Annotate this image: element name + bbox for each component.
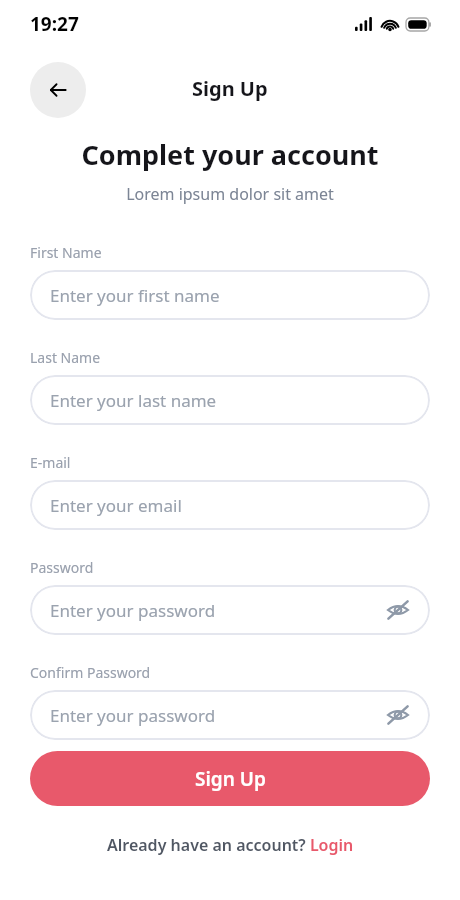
button[interactable]: Enter your password: [30, 690, 430, 740]
staticText: Enter your password: [50, 704, 384, 727]
staticText: Sign Up: [192, 75, 268, 102]
button[interactable]: Enter your email: [30, 480, 430, 530]
staticText: Sign Up: [195, 766, 266, 792]
button[interactable]: Enter your first name: [30, 270, 430, 320]
button[interactable]: Back: [30, 62, 86, 118]
staticText: Already have an account? Login: [107, 834, 354, 856]
button[interactable]: Enter your last name: [30, 375, 430, 425]
button[interactable]: Already have an account? Login: [101, 832, 360, 858]
staticText: Lorem ipsum dolor sit amet: [126, 183, 334, 205]
button[interactable]: Enter your password: [30, 585, 430, 635]
button[interactable]: Show password: [384, 596, 412, 624]
staticText: E-mail: [30, 453, 71, 472]
staticText: Enter your password: [50, 599, 384, 622]
button[interactable]: Sign Up: [30, 751, 430, 806]
staticText: Last Name: [30, 348, 101, 367]
staticText: First Name: [30, 243, 102, 262]
staticText: Password: [30, 558, 94, 577]
staticText: Enter your last name: [50, 389, 412, 412]
button[interactable]: Show password: [384, 701, 412, 729]
staticText: Confirm Password: [30, 663, 151, 682]
staticText: Enter your email: [50, 494, 412, 517]
staticText: Complet your account: [81, 136, 379, 173]
staticText: 19:27: [30, 11, 79, 37]
staticText: Enter your first name: [50, 284, 412, 307]
